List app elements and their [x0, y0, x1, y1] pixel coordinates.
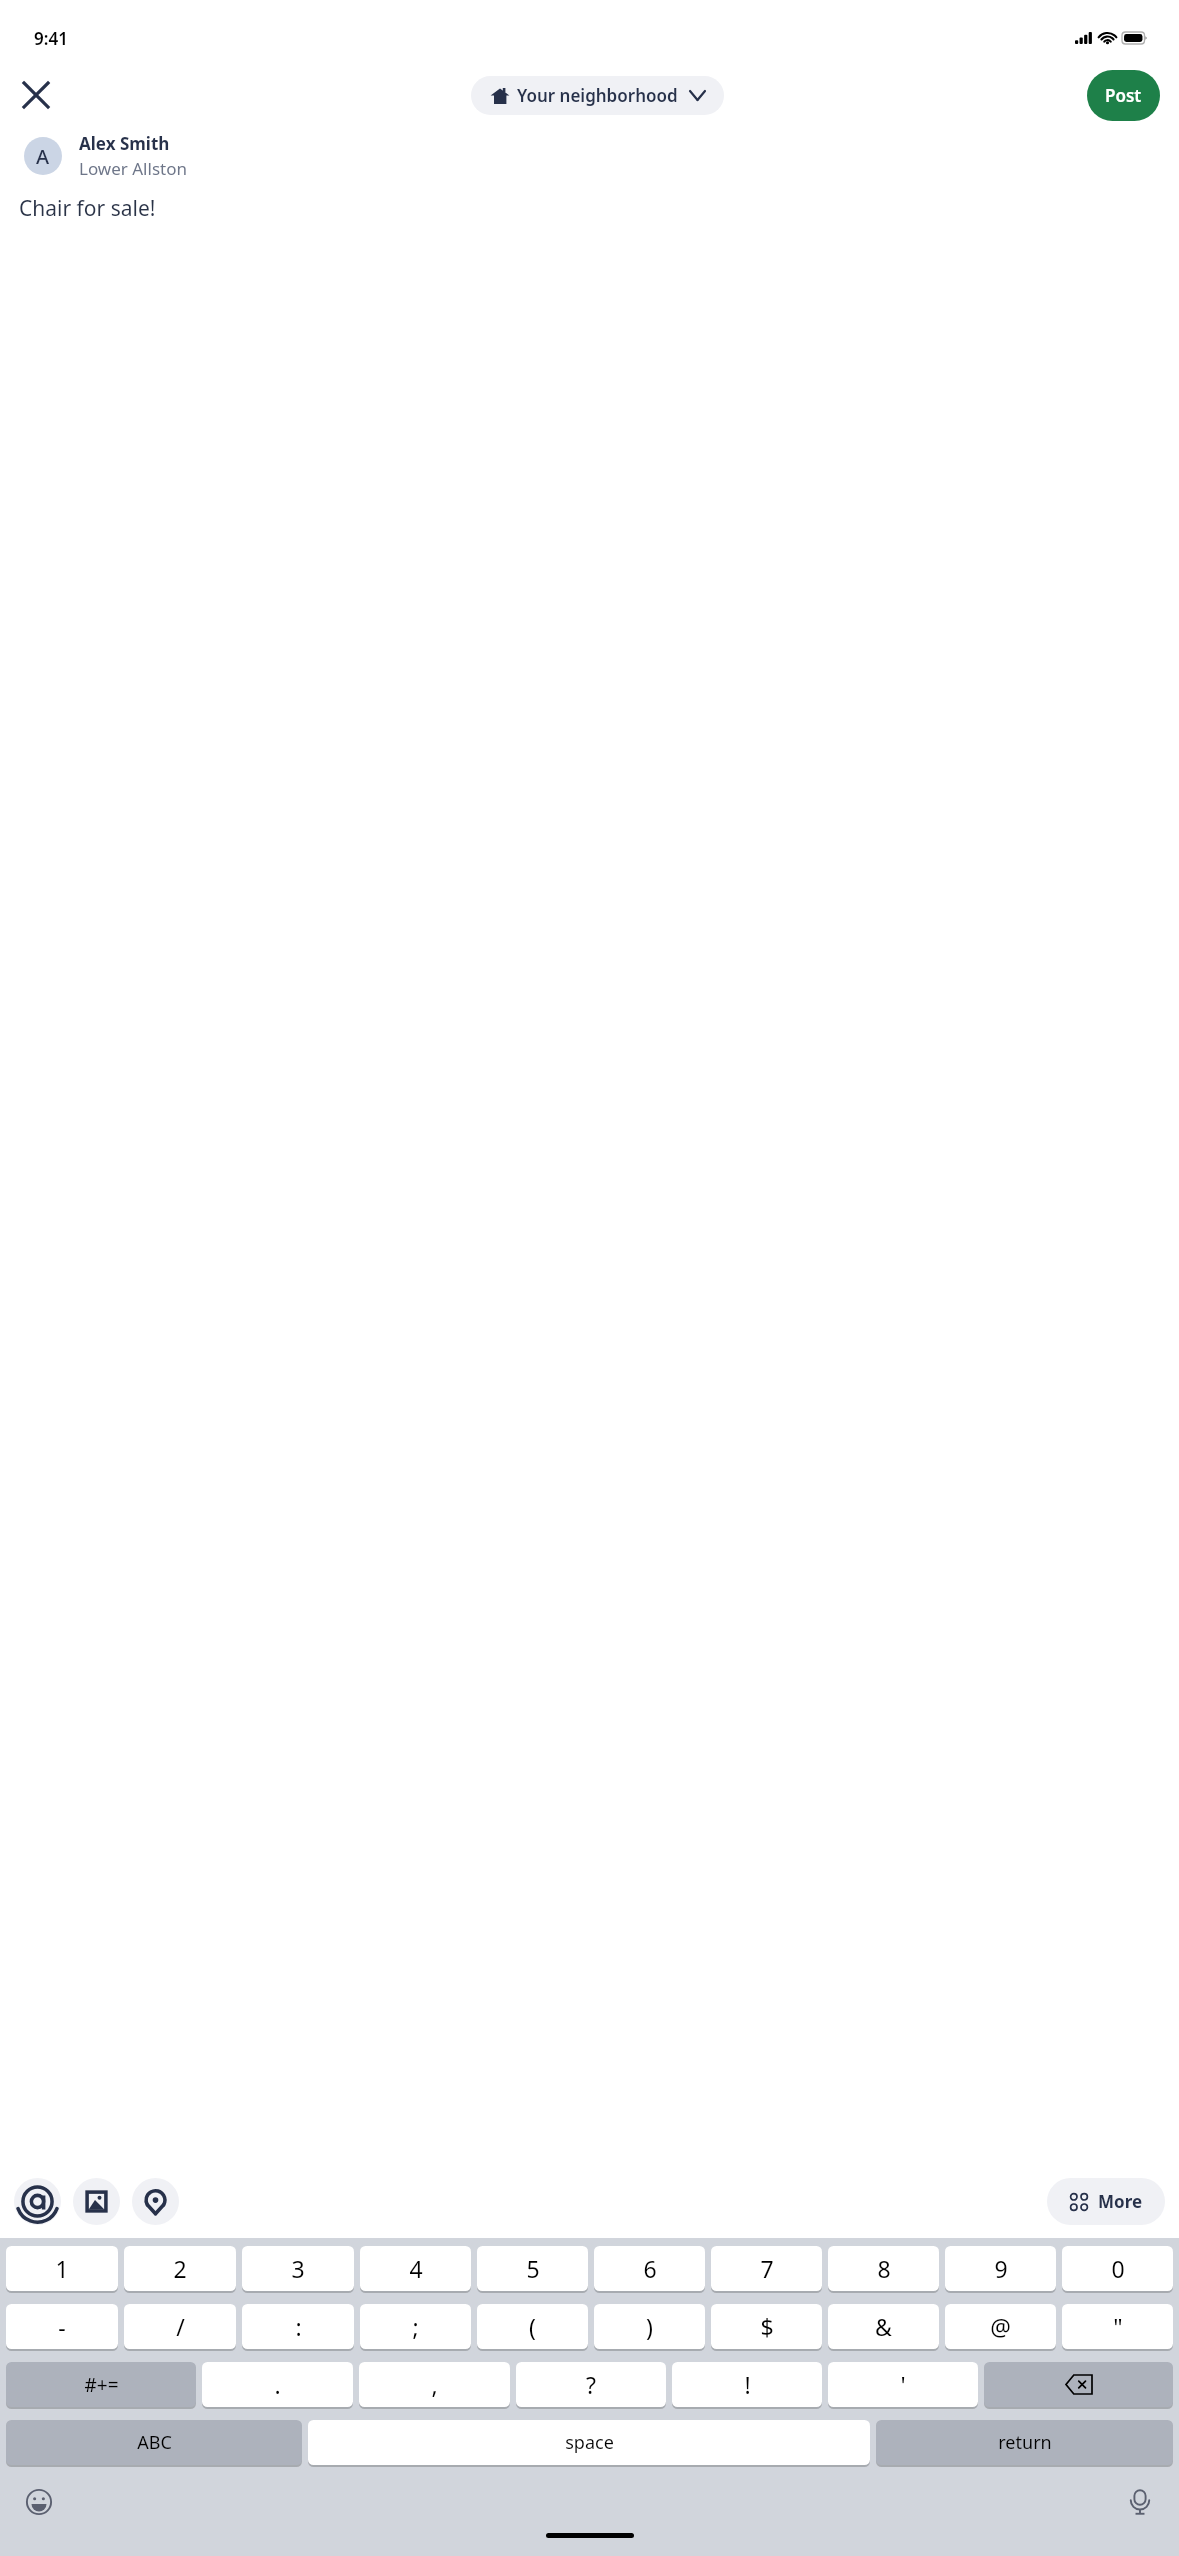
button[interactable]: Add location	[132, 2178, 179, 2225]
staticText: A	[36, 143, 50, 170]
button[interactable]: !	[672, 2362, 822, 2407]
staticText: Chair for sale!	[19, 194, 156, 223]
button[interactable]: Close	[20, 79, 52, 111]
button[interactable]: '	[828, 2362, 978, 2407]
button[interactable]: ABC	[6, 2420, 302, 2465]
staticText: More	[1098, 2190, 1143, 2213]
button[interactable]: 0	[1062, 2246, 1173, 2291]
staticText: 8	[877, 2253, 891, 2284]
button[interactable]: .	[202, 2362, 353, 2407]
button[interactable]: More	[1047, 2178, 1165, 2225]
staticText: 0	[1111, 2253, 1125, 2284]
staticText: &	[875, 2311, 892, 2342]
button[interactable]: 5	[477, 2246, 588, 2291]
button[interactable]: (	[477, 2304, 588, 2349]
staticText: 2	[173, 2253, 187, 2284]
staticText: @	[990, 2311, 1011, 2342]
staticText: Your neighborhood	[517, 84, 678, 107]
staticText: Alex Smith	[79, 132, 170, 155]
staticText: 9	[994, 2253, 1008, 2284]
button[interactable]: -	[6, 2304, 118, 2349]
staticText: (	[529, 2311, 536, 2342]
staticText: '	[900, 2369, 906, 2400]
button[interactable]: Mention	[14, 2178, 61, 2225]
staticText: 9:41	[34, 27, 68, 50]
button[interactable]: @	[945, 2304, 1056, 2349]
button[interactable]: Emoji	[22, 2485, 56, 2519]
button[interactable]: :	[242, 2304, 354, 2349]
staticText: -	[58, 2311, 66, 2342]
button[interactable]: 7	[711, 2246, 822, 2291]
button[interactable]: ;	[360, 2304, 471, 2349]
staticText: return	[998, 2430, 1052, 2455]
staticText: #+=	[84, 2372, 119, 2398]
staticText: ,	[431, 2369, 438, 2400]
staticText: 7	[760, 2253, 774, 2284]
staticText: /	[176, 2311, 185, 2342]
staticText: $	[760, 2311, 774, 2342]
staticText: 5	[526, 2253, 540, 2284]
button[interactable]: 8	[828, 2246, 939, 2291]
staticText: space	[565, 2430, 614, 2455]
staticText: Post	[1105, 84, 1142, 107]
button[interactable]: Dictation	[1123, 2485, 1157, 2519]
button[interactable]: 6	[594, 2246, 705, 2291]
staticText: Lower Allston	[79, 157, 187, 180]
button[interactable]: $	[711, 2304, 822, 2349]
button[interactable]: "	[1062, 2304, 1173, 2349]
staticText: 3	[291, 2253, 305, 2284]
button[interactable]: /	[124, 2304, 236, 2349]
button[interactable]: return	[876, 2420, 1173, 2465]
button[interactable]	[984, 2362, 1173, 2407]
staticText: ABC	[137, 2430, 172, 2455]
button[interactable]: A	[24, 132, 1179, 180]
button[interactable]: Your neighborhood	[471, 76, 724, 115]
staticText: :	[295, 2311, 302, 2342]
button[interactable]: &	[828, 2304, 939, 2349]
button[interactable]: 4	[360, 2246, 471, 2291]
staticText: ?	[586, 2369, 596, 2400]
button[interactable]: 3	[242, 2246, 354, 2291]
button[interactable]: Add photo	[73, 2178, 120, 2225]
button[interactable]: #+=	[6, 2362, 196, 2407]
button[interactable]: ?	[516, 2362, 666, 2407]
button[interactable]: 1	[6, 2246, 118, 2291]
button[interactable]: space	[308, 2420, 870, 2465]
staticText: 1	[55, 2253, 69, 2284]
button[interactable]: )	[594, 2304, 705, 2349]
button[interactable]: 9	[945, 2246, 1056, 2291]
staticText: .	[274, 2369, 281, 2400]
button[interactable]: Post	[1087, 70, 1160, 121]
staticText: "	[1113, 2311, 1123, 2342]
staticText: 4	[409, 2253, 423, 2284]
button[interactable]: ,	[359, 2362, 510, 2407]
button[interactable]: 2	[124, 2246, 236, 2291]
staticText: 6	[643, 2253, 657, 2284]
staticText: ;	[412, 2311, 419, 2342]
staticText: )	[646, 2311, 653, 2342]
staticText: !	[744, 2369, 751, 2400]
